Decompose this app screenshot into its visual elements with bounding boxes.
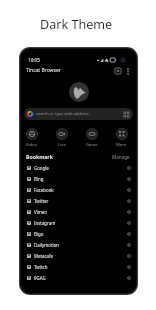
button[interactable]: Tincat logo <box>69 82 89 102</box>
staticText: Dailymotion <box>34 242 60 248</box>
other: Options <box>127 232 131 236</box>
button[interactable]: search or type web address <box>24 108 133 120</box>
staticText: Dark Theme <box>40 16 113 33</box>
button[interactable]: Facebook <box>21 184 136 195</box>
button[interactable]: 9GAG <box>21 272 136 283</box>
button[interactable]: More options <box>123 66 133 76</box>
other: Options <box>127 243 131 247</box>
staticText: Bookmark <box>26 153 53 160</box>
staticText: Game <box>86 142 98 148</box>
button[interactable]: Dailymotion <box>21 239 136 250</box>
staticText: 16:05 <box>28 57 40 63</box>
staticText: Bing <box>34 176 44 182</box>
button[interactable]: Tabs <box>112 65 123 76</box>
button[interactable]: Vimeo <box>21 206 136 217</box>
button[interactable]: Bigo <box>21 228 136 239</box>
other: Options <box>127 188 131 192</box>
button[interactable]: More <box>112 128 131 148</box>
button[interactable]: Metacafe <box>21 250 136 261</box>
button[interactable]: Google <box>21 162 136 173</box>
other: Options <box>127 166 131 170</box>
other: Options <box>127 254 131 258</box>
other: Options <box>127 199 131 203</box>
staticText: Facebook <box>34 187 54 193</box>
button[interactable]: Live <box>52 128 71 148</box>
staticText: search or type web address <box>36 111 89 117</box>
staticText: Video <box>26 142 38 148</box>
button[interactable]: Bing <box>21 173 136 184</box>
button[interactable]: Video <box>22 128 41 148</box>
staticText: Manage <box>112 154 130 160</box>
other: Scan code <box>124 112 129 117</box>
staticText: 9GAG <box>34 275 46 281</box>
staticText: More <box>116 142 127 148</box>
staticText: Twitch <box>34 264 48 270</box>
other: Options <box>127 265 131 269</box>
staticText: Twitter <box>34 198 49 204</box>
button[interactable]: Twitter <box>21 195 136 206</box>
staticText: Metacafe <box>34 253 54 259</box>
other: Options <box>127 210 131 214</box>
button[interactable]: Game <box>82 128 101 148</box>
staticText: Google <box>34 165 49 171</box>
button[interactable]: Twitch <box>21 261 136 272</box>
other: Options <box>127 221 131 225</box>
button[interactable]: Manage <box>112 154 130 160</box>
other: Options <box>127 276 131 280</box>
staticText: Vimeo <box>34 209 48 215</box>
button[interactable]: Instagram <box>21 217 136 228</box>
staticText: Bigo <box>34 231 44 237</box>
other: Options <box>127 177 131 181</box>
staticText: Tincat Browser <box>26 67 61 74</box>
staticText: Live <box>58 142 66 148</box>
staticText: Instagram <box>34 220 56 226</box>
